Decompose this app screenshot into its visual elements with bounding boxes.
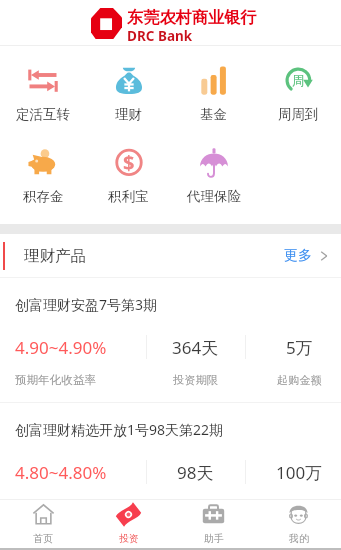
staticText: 投资期限 bbox=[173, 498, 218, 512]
staticText: 364天 bbox=[172, 336, 219, 359]
button[interactable]: 定活互转 bbox=[0, 66, 86, 123]
staticText: 积利宝 bbox=[108, 188, 149, 205]
staticText: 基金 bbox=[200, 106, 227, 123]
staticText: 定活互转 bbox=[16, 106, 70, 123]
staticText: 助手 bbox=[204, 532, 224, 545]
staticText: 预期年化收益率 bbox=[15, 498, 97, 513]
button[interactable]: 理财产品 bbox=[0, 234, 341, 277]
staticText: 代理保险 bbox=[187, 188, 241, 205]
other: Home bbox=[32, 503, 55, 526]
staticText: 东莞农村商业银行 bbox=[127, 7, 257, 27]
staticText: 5万 bbox=[286, 336, 313, 359]
button[interactable]: $ bbox=[86, 148, 171, 205]
staticText: 98天 bbox=[177, 461, 214, 484]
staticText: 首页 bbox=[33, 532, 53, 545]
other: Profile bbox=[287, 503, 310, 526]
staticText: 更多 bbox=[284, 247, 312, 265]
staticText: 预期年化收益率 bbox=[15, 373, 97, 388]
button[interactable]: 周 bbox=[256, 66, 341, 123]
button[interactable]: 创富理财精选开放1号98天第22期 bbox=[0, 403, 341, 527]
staticText: 4.90~4.90% bbox=[15, 336, 107, 359]
staticText: 周周到 bbox=[278, 106, 319, 123]
button[interactable]: 代理保险 bbox=[171, 148, 256, 205]
other: Assistant bbox=[202, 503, 225, 526]
staticText: 积存金 bbox=[23, 188, 64, 205]
staticText: 周 bbox=[292, 73, 305, 89]
button[interactable]: 基金 bbox=[171, 66, 256, 123]
staticText: 创富理财精选开放1号98天第22期 bbox=[15, 420, 224, 439]
button[interactable]: 积存金 bbox=[0, 148, 86, 205]
button[interactable]: Home bbox=[0, 500, 86, 548]
staticText: DRC Bank bbox=[127, 27, 193, 45]
staticText: 创富理财安盈7号第3期 bbox=[15, 295, 158, 314]
button[interactable]: Profile bbox=[256, 500, 341, 548]
button[interactable]: Assistant bbox=[171, 500, 256, 548]
staticText: 理财产品 bbox=[24, 246, 86, 266]
button[interactable]: 理财 bbox=[86, 66, 171, 123]
other: Invest bbox=[117, 503, 140, 526]
staticText: 我的 bbox=[289, 532, 309, 545]
staticText: 100万 bbox=[276, 461, 323, 484]
staticText: 起购金额 bbox=[277, 373, 322, 387]
button[interactable]: 创富理财安盈7号第3期 bbox=[0, 278, 341, 402]
button[interactable]: Invest bbox=[86, 500, 171, 548]
staticText: 起购金额 bbox=[277, 498, 322, 512]
staticText: 投资 bbox=[119, 532, 139, 545]
staticText: 投资期限 bbox=[173, 373, 218, 387]
staticText: $ bbox=[123, 149, 135, 176]
staticText: 4.80~4.80% bbox=[15, 461, 107, 484]
staticText: 理财 bbox=[115, 106, 142, 123]
